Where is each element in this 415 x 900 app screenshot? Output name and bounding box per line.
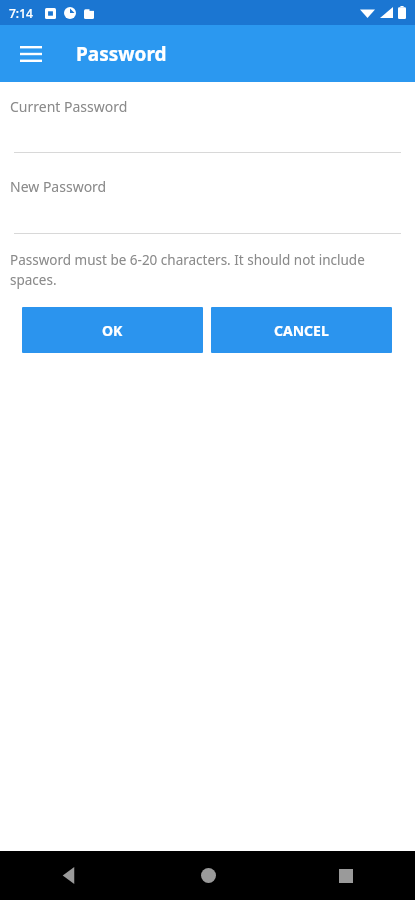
button[interactable]: New Password xyxy=(0,177,415,233)
button[interactable]: Home xyxy=(139,851,277,900)
staticText: OK xyxy=(102,321,123,340)
button[interactable]: Recent apps xyxy=(277,851,415,900)
staticText: Password xyxy=(76,41,167,67)
staticText: Current Password xyxy=(10,97,128,116)
staticText: Password must be 6-20 characters. It sho… xyxy=(10,251,377,289)
button[interactable]: Open navigation menu xyxy=(8,31,54,77)
button[interactable]: Back xyxy=(0,851,139,900)
button[interactable]: Current Password xyxy=(0,97,415,152)
button[interactable]: OK xyxy=(22,307,203,353)
staticText: CANCEL xyxy=(274,321,329,340)
staticText: 7:14 xyxy=(9,5,33,21)
staticText: New Password xyxy=(10,177,107,196)
button[interactable]: CANCEL xyxy=(211,307,392,353)
